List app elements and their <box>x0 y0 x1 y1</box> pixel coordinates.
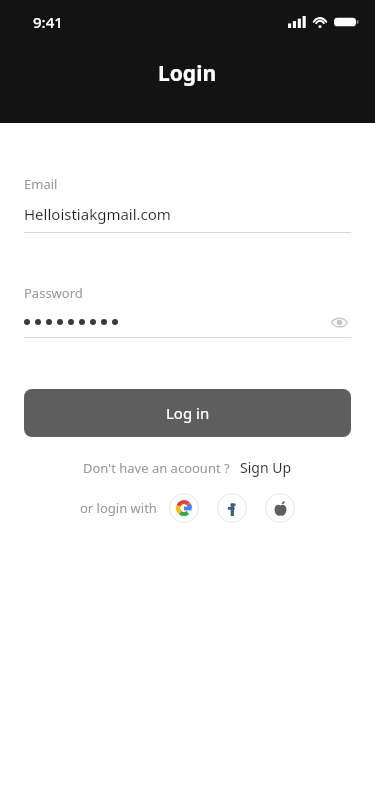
staticText: or login with <box>80 499 157 517</box>
button[interactable]: Sign in with Google <box>169 493 199 523</box>
button[interactable]: Sign in with Apple <box>265 493 295 523</box>
staticText: Login <box>158 59 217 88</box>
staticText: 9:41 <box>33 12 63 32</box>
button[interactable]: Show password <box>327 312 351 332</box>
button[interactable]: Sign in with Facebook <box>217 493 247 523</box>
staticText: Email <box>24 175 58 193</box>
staticText: Helloistiakgmail.com <box>24 204 171 224</box>
staticText: Password <box>24 284 83 302</box>
button[interactable]: Log in <box>24 389 351 437</box>
staticText: Don't have an acoount ? <box>83 459 230 477</box>
staticText: Sign Up <box>240 458 292 477</box>
button[interactable]: Sign Up <box>240 458 292 477</box>
staticText: Log in <box>166 403 210 423</box>
